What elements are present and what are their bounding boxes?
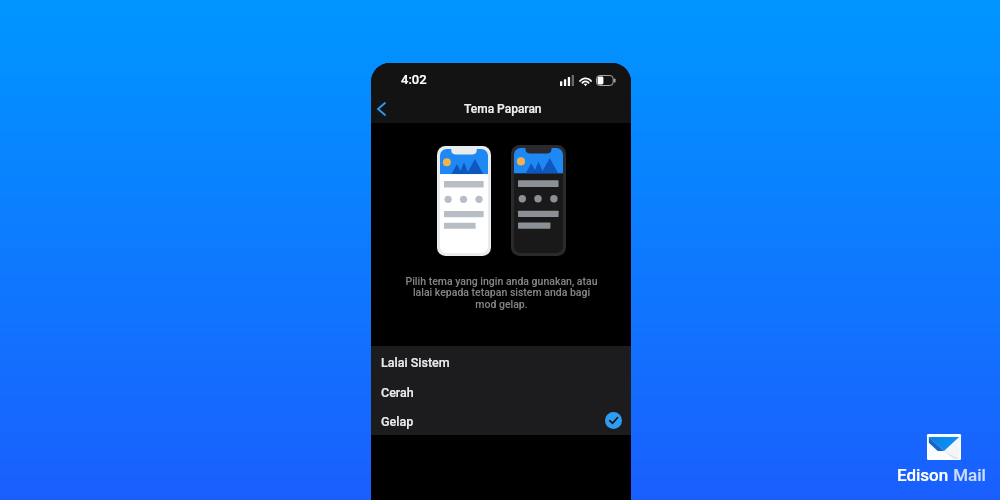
button[interactable]: Gelap [371,406,631,435]
staticText: Gelap [381,414,414,429]
staticText: Pilih tema yang ingin anda gunakan, atau… [405,275,598,311]
staticText: 4:02 [401,72,427,87]
button[interactable]: Back [371,96,394,122]
staticText: Cerah [381,385,414,400]
button[interactable]: Cerah [371,376,631,406]
staticText: Lalai Sistem [381,355,450,370]
button[interactable]: Lalai Sistem [371,346,631,376]
staticText: Edison [897,465,949,485]
staticText: Tema Paparan [464,102,542,116]
staticText: Mail [949,465,986,485]
